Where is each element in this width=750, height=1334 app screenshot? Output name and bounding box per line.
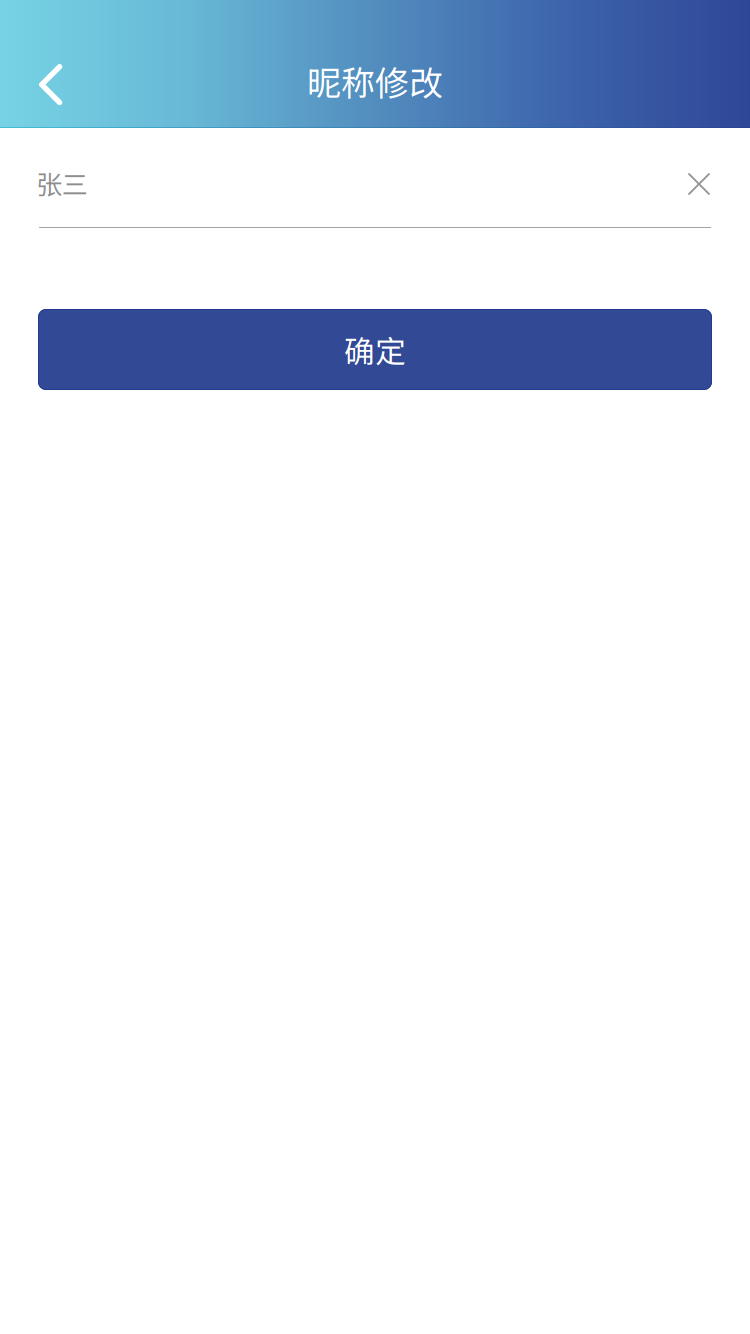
staticText: 确定 (344, 327, 406, 372)
staticText: 张三 (36, 164, 88, 202)
staticText: 昵称修改 (307, 56, 443, 106)
button[interactable]: 确定 (38, 309, 712, 390)
button[interactable]: Clear text (669, 154, 729, 214)
button[interactable]: Back (0, 40, 96, 128)
